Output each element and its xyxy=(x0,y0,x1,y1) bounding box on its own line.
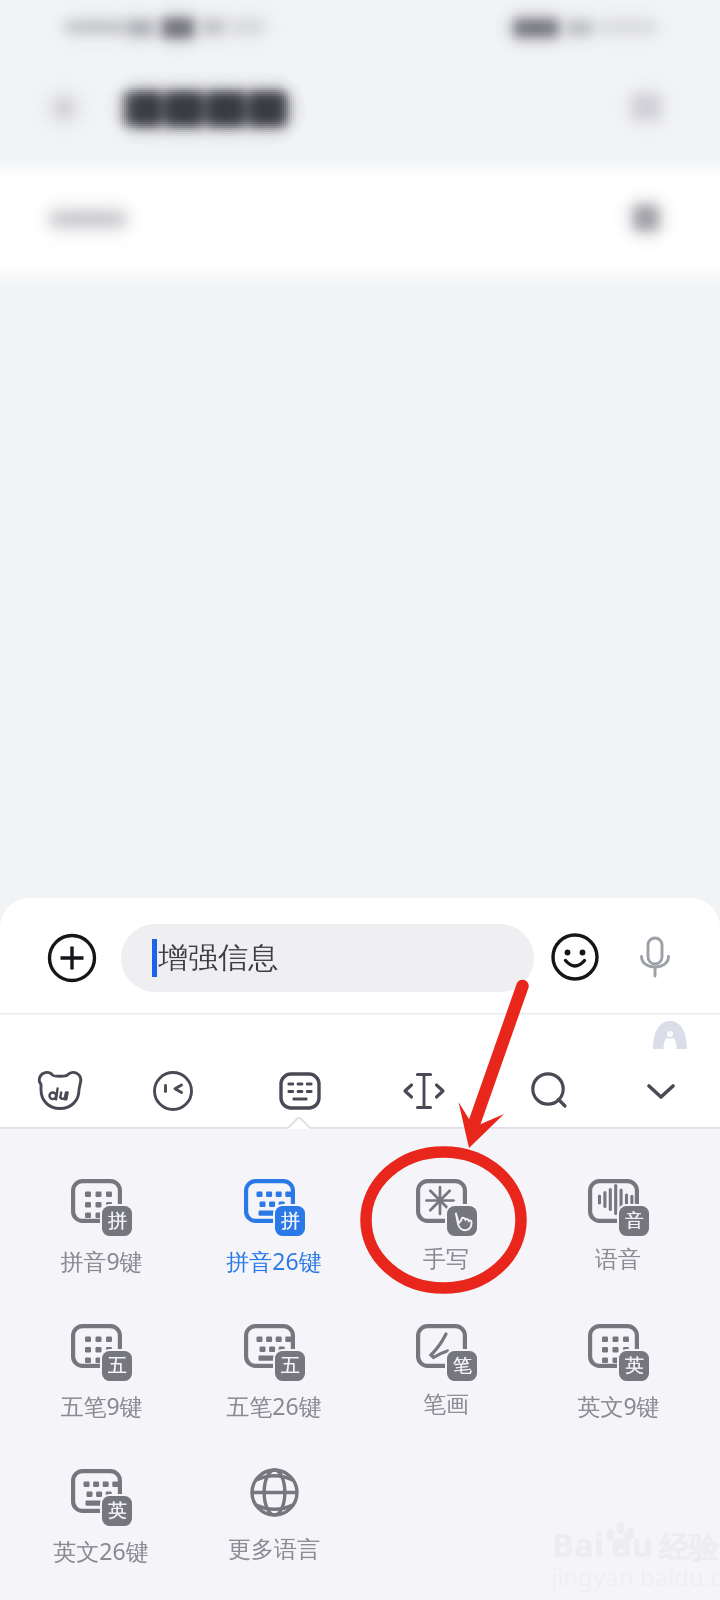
staticText: 笔 xyxy=(453,1354,472,1378)
staticText: 音 xyxy=(625,1209,644,1233)
button[interactable]: Keyboard layouts xyxy=(264,1055,336,1127)
button[interactable]: 五 xyxy=(21,1324,181,1444)
button[interactable]: 英 xyxy=(538,1324,698,1444)
staticText: du xyxy=(611,1522,654,1567)
button[interactable]: Emoticons xyxy=(137,1055,209,1127)
staticText: 语音 xyxy=(595,1245,641,1274)
staticText: 更多语言 xyxy=(228,1535,320,1564)
staticText: 五 xyxy=(108,1354,127,1378)
staticText: 五笔26键 xyxy=(226,1390,322,1421)
button[interactable]: 更多语言 xyxy=(194,1469,354,1589)
staticText: 英 xyxy=(108,1499,127,1523)
button[interactable]: Baidu assistant xyxy=(24,1055,96,1127)
button[interactable]: Voice input xyxy=(629,931,681,983)
staticText: 笔画 xyxy=(423,1390,469,1419)
button[interactable]: Move cursor xyxy=(388,1055,460,1127)
staticText: 手写 xyxy=(423,1245,469,1274)
button[interactable]: 音 xyxy=(538,1179,698,1299)
button[interactable]: 拼 xyxy=(21,1179,181,1299)
button[interactable]: Add attachment xyxy=(46,932,98,984)
staticText: Bai xyxy=(552,1522,604,1567)
button[interactable]: 手写 xyxy=(366,1179,526,1299)
button[interactable]: 笔 xyxy=(366,1324,526,1444)
staticText: 拼音26键 xyxy=(226,1245,322,1276)
staticText: 英文26键 xyxy=(53,1535,149,1566)
staticText: 五笔9键 xyxy=(60,1390,143,1421)
button[interactable]: 拼 xyxy=(194,1179,354,1299)
staticText: 拼音9键 xyxy=(60,1245,143,1276)
button[interactable]: 五 xyxy=(194,1324,354,1444)
button[interactable]: Emoji xyxy=(549,931,601,983)
staticText: 经验 xyxy=(659,1529,719,1567)
staticText: 增强信息 xyxy=(158,939,278,977)
staticText: 英文9键 xyxy=(577,1390,660,1421)
button[interactable]: 英 xyxy=(21,1469,181,1589)
staticText: 五 xyxy=(281,1354,300,1378)
staticText: 拼 xyxy=(108,1209,127,1233)
staticText: 拼 xyxy=(281,1209,300,1233)
staticText: 英 xyxy=(625,1354,644,1378)
button[interactable]: Search xyxy=(513,1055,585,1127)
button[interactable]: 增强信息 xyxy=(121,924,534,992)
button[interactable]: Hide keyboard xyxy=(625,1055,697,1127)
